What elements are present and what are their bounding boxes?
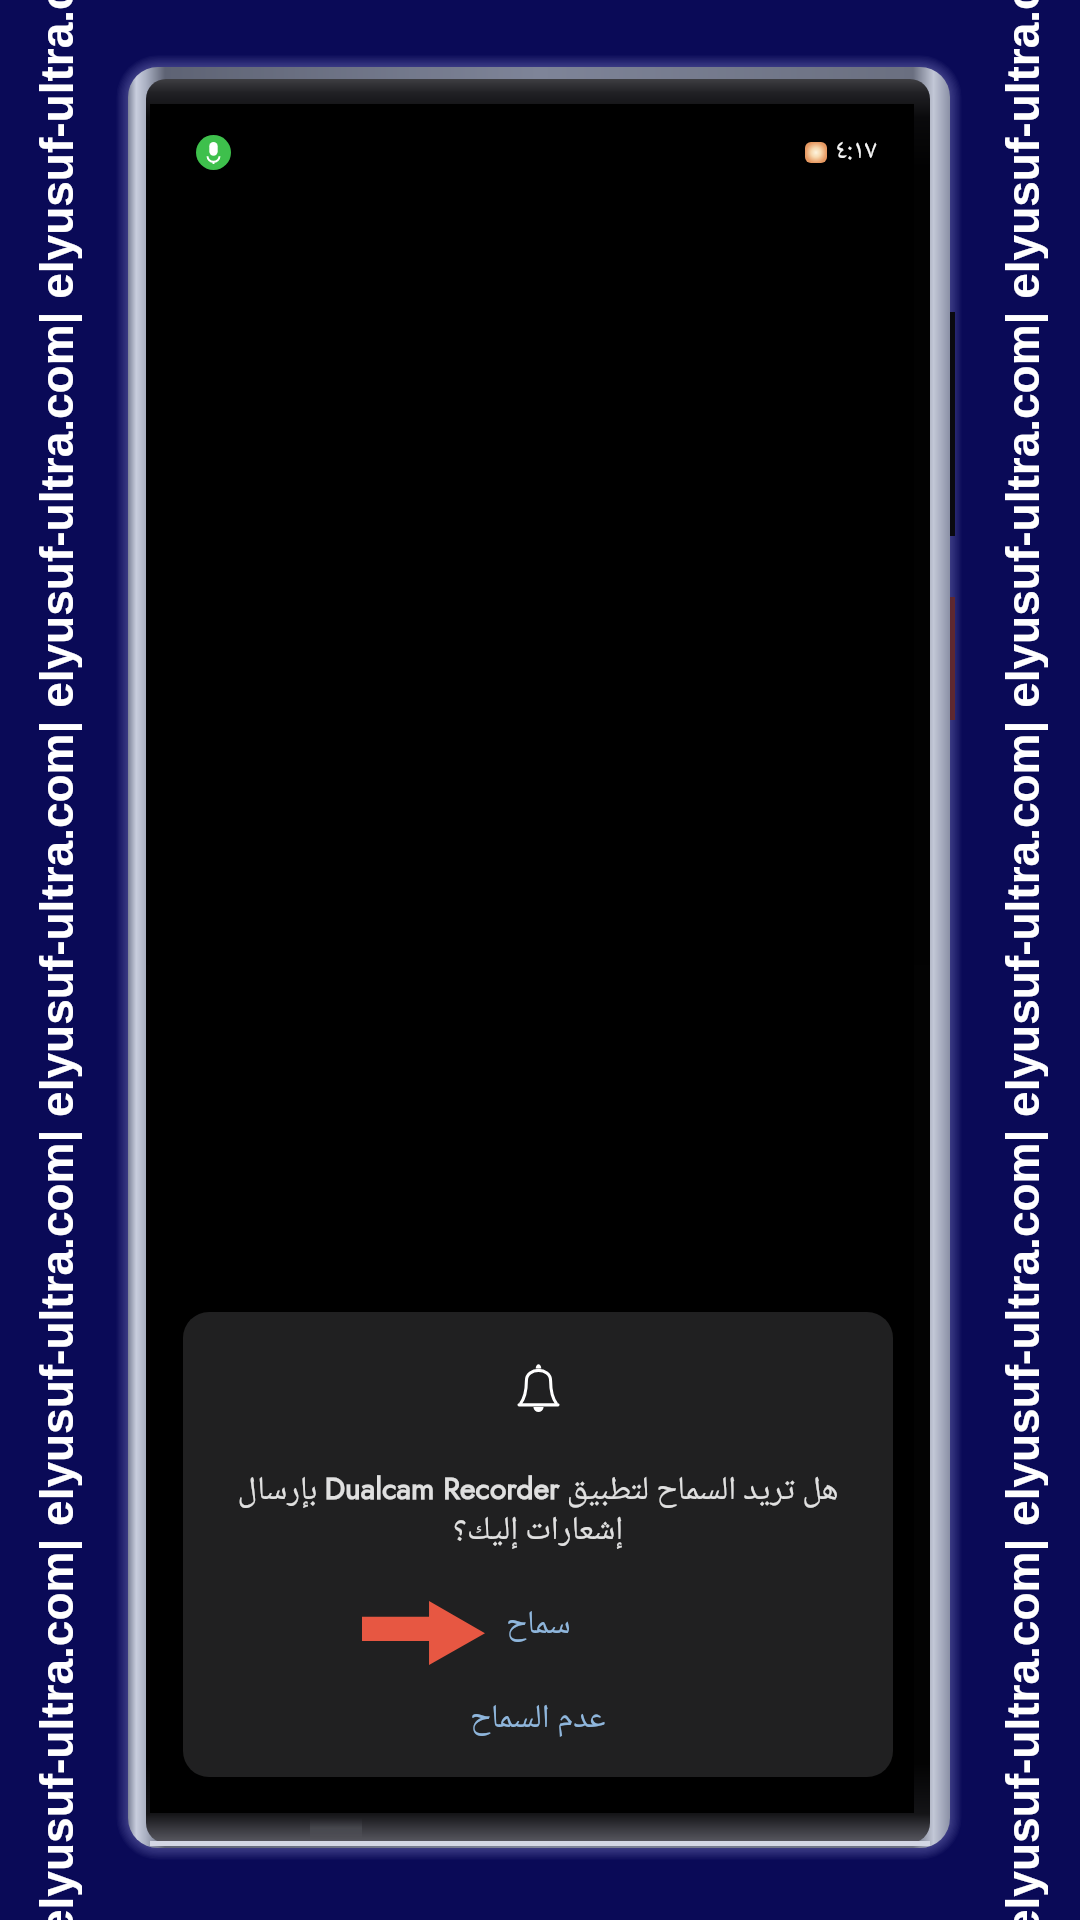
button[interactable]: عدم السماح	[183, 1684, 893, 1756]
staticText: elyusuf-ultra.com| elyusuf-ultra.com| el…	[31, 0, 82, 1920]
staticText: هل تريد السماح لتطبيق Dualcam Recorder ب…	[191, 1464, 885, 1560]
staticText: ٤:١٧	[835, 129, 877, 175]
button[interactable]: Microphone in use	[196, 135, 231, 170]
other: Notifications	[518, 1363, 559, 1415]
staticText: elyusuf-ultra.com| elyusuf-ultra.com| el…	[997, 0, 1048, 1920]
staticText: عدم السماح	[470, 1692, 606, 1748]
other: App notification icon	[805, 142, 827, 163]
staticText: سماح	[506, 1598, 571, 1654]
button[interactable]: سماح	[183, 1590, 893, 1662]
